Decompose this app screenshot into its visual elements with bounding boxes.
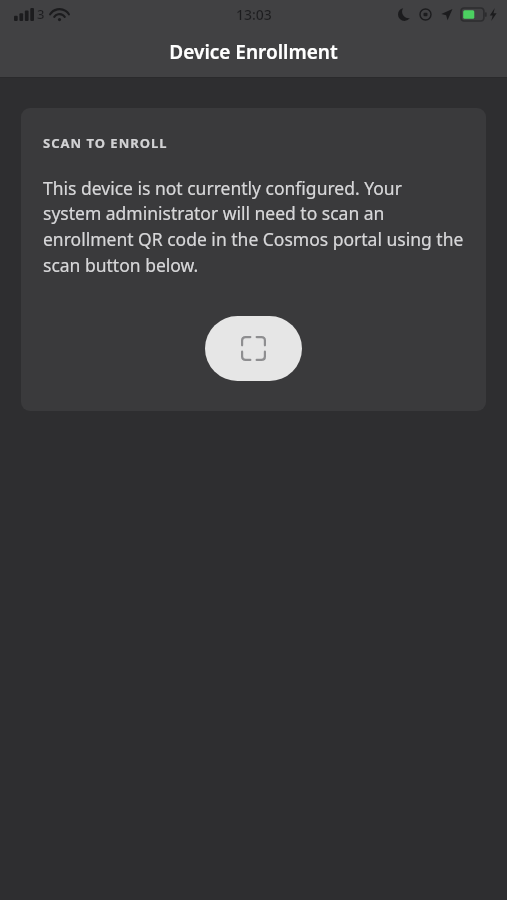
- staticText: Device Enrollment: [169, 39, 338, 65]
- button[interactable]: Scan QR code: [205, 316, 302, 381]
- staticText: SCAN TO ENROLL: [43, 134, 168, 152]
- staticText: 3: [37, 5, 45, 23]
- staticText: 13:03: [236, 5, 272, 24]
- staticText: This device is not currently configured.…: [43, 176, 464, 278]
